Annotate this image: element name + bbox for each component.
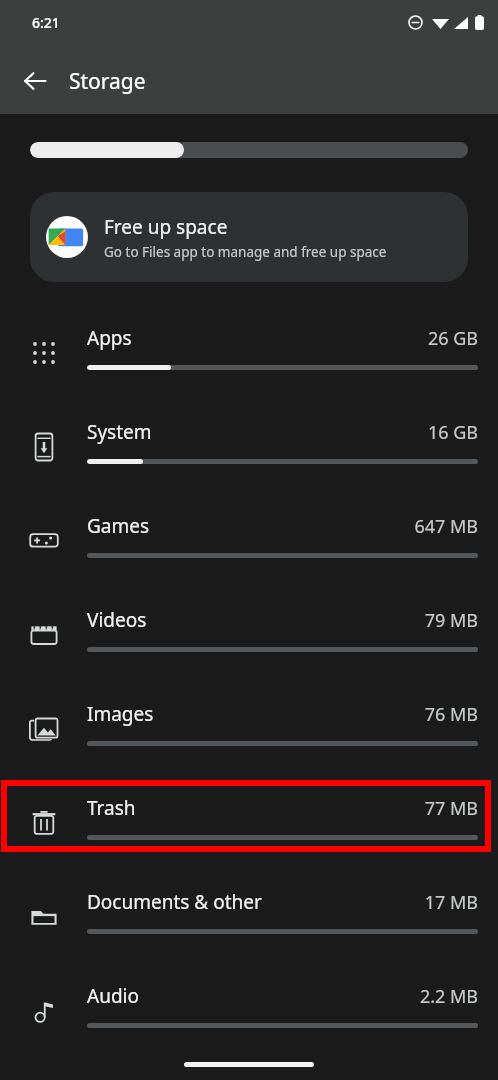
staticText: Audio	[87, 983, 419, 1009]
staticText: Videos	[87, 607, 424, 633]
staticText: 76 MB	[424, 702, 478, 727]
staticText: Games	[87, 513, 414, 539]
staticText: Documents & other	[87, 889, 424, 915]
button[interactable]: Back	[13, 59, 57, 103]
staticText: 647 MB	[414, 514, 478, 539]
staticText: Free up space	[104, 214, 228, 240]
staticText: 2.2 MB	[419, 984, 478, 1009]
staticText: Storage	[69, 67, 146, 96]
button[interactable]: Documents & other	[0, 864, 498, 958]
staticText: Images	[87, 701, 424, 727]
button[interactable]: Games	[0, 488, 498, 582]
button[interactable]: Images	[0, 676, 498, 770]
staticText: 17 MB	[424, 890, 478, 915]
staticText: 79 MB	[424, 608, 478, 633]
button[interactable]: System	[0, 394, 498, 488]
button[interactable]: Videos	[0, 582, 498, 676]
staticText: Trash	[87, 795, 424, 821]
staticText: 77 MB	[424, 796, 478, 821]
staticText: 26 GB	[427, 326, 478, 351]
button[interactable]: Free up space	[30, 192, 468, 282]
button[interactable]: Apps	[0, 300, 498, 394]
staticText: System	[87, 419, 427, 445]
staticText: 6:21	[32, 13, 60, 32]
staticText: Go to Files app to manage and free up sp…	[104, 243, 387, 261]
staticText: Apps	[87, 325, 427, 351]
button[interactable]: Audio	[0, 958, 498, 1052]
staticText: 16 GB	[427, 420, 478, 445]
button[interactable]: Trash	[0, 770, 498, 864]
